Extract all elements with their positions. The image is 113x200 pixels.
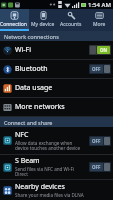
button[interactable]: Toggle off [89, 136, 111, 146]
button[interactable]: My device [29, 9, 57, 31]
staticText: Accounts [60, 21, 82, 28]
staticText: More [93, 21, 106, 28]
staticText: Connect and share [4, 119, 53, 126]
button[interactable]: More [85, 9, 113, 31]
staticText: Data usage [15, 83, 53, 93]
staticText: NFC [15, 130, 29, 140]
button[interactable]: Nearby devices [0, 180, 113, 200]
staticText: OFF [92, 164, 101, 170]
staticText: My device [31, 21, 55, 28]
staticText: Send files via NFC and Wi-Fi Direct [15, 166, 87, 178]
staticText: 1:54 AM [88, 1, 111, 9]
staticText: Connections [0, 21, 29, 28]
staticText: OFF [92, 66, 101, 72]
button[interactable]: Accounts [57, 9, 85, 31]
button[interactable]: NFC [0, 127, 113, 154]
staticText: More networks [15, 102, 65, 112]
staticText: Bluetooth [15, 64, 48, 74]
staticText: OFF [92, 138, 101, 144]
staticText: ON [100, 47, 108, 53]
button[interactable]: Toggle off [89, 64, 111, 74]
button[interactable]: Toggle on [89, 45, 111, 55]
button[interactable]: Wi-Fi [0, 41, 113, 59]
button[interactable]: More networks [0, 98, 113, 116]
staticText: S Beam [15, 156, 40, 166]
staticText: Share your media files via DLNA [15, 192, 84, 198]
button[interactable]: Connections [0, 9, 29, 31]
button[interactable]: S Beam [0, 155, 113, 179]
staticText: Wi-Fi [15, 45, 32, 55]
button[interactable]: Bluetooth [0, 60, 113, 78]
staticText: Network connections [4, 33, 59, 40]
button[interactable]: Toggle off [89, 162, 111, 172]
button[interactable]: Data usage [0, 79, 113, 97]
staticText: Allow data exchange when device touches … [15, 140, 87, 152]
staticText: Nearby devices [15, 182, 65, 192]
